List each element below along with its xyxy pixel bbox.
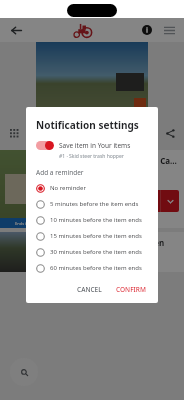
button[interactable]: 60 minutes before the item ends bbox=[36, 260, 150, 276]
staticText: 15 minutes before the item ends bbox=[50, 232, 142, 240]
staticText: 30 minutes before the item ends bbox=[50, 248, 142, 256]
button[interactable]: Information bbox=[138, 21, 156, 39]
button[interactable]: BID $1 bbox=[68, 190, 179, 212]
button[interactable]: 5 minutes before the item ends bbox=[36, 196, 150, 212]
staticText: BID $1 bbox=[103, 196, 126, 206]
button[interactable]: CONFIRM bbox=[112, 282, 150, 297]
button[interactable]: Grid view bbox=[6, 125, 22, 141]
staticText: #3 · Rotary Drum Screen bbox=[68, 237, 165, 248]
button[interactable]: Menu bbox=[160, 21, 178, 39]
staticText: No reminder bbox=[50, 184, 86, 192]
button[interactable]: 10 minutes before the item ends bbox=[36, 212, 150, 228]
staticText: CONFIRM bbox=[116, 285, 146, 294]
button[interactable]: Back bbox=[6, 20, 26, 40]
staticText: 60 minutes before the item ends bbox=[50, 264, 142, 272]
staticText: #2 · Hurricane 20' X 30' Carport bbox=[68, 155, 179, 166]
staticText: Ends in 4h 18min bbox=[15, 221, 48, 226]
button[interactable]: Ends in 4h 18min bbox=[0, 150, 184, 228]
button[interactable]: #3 · Rotary Drum Screen bbox=[0, 232, 184, 272]
button[interactable]: Save item in Your items bbox=[36, 141, 150, 150]
button[interactable]: Share bbox=[162, 125, 178, 141]
staticText: Notification settings bbox=[36, 118, 139, 132]
staticText: Save item in Your items bbox=[59, 141, 131, 150]
staticText: 5 minutes before the item ends bbox=[50, 200, 139, 208]
staticText: Model GE-880 bbox=[68, 250, 108, 258]
staticText: CANCEL bbox=[77, 285, 102, 294]
staticText: #1 · Skid steer trash hopper bbox=[59, 153, 124, 160]
button[interactable]: Search bbox=[10, 358, 38, 386]
staticText: Add a reminder bbox=[36, 168, 84, 177]
staticText: 10 minutes before the item ends bbox=[50, 216, 142, 224]
button[interactable]: CANCEL bbox=[73, 282, 106, 297]
button[interactable]: No reminder bbox=[36, 180, 150, 196]
button[interactable]: 30 minutes before the item ends bbox=[36, 244, 150, 260]
button[interactable]: 15 minutes before the item ends bbox=[36, 228, 150, 244]
staticText: All steel with enclosed sidewalls bbox=[68, 168, 158, 176]
